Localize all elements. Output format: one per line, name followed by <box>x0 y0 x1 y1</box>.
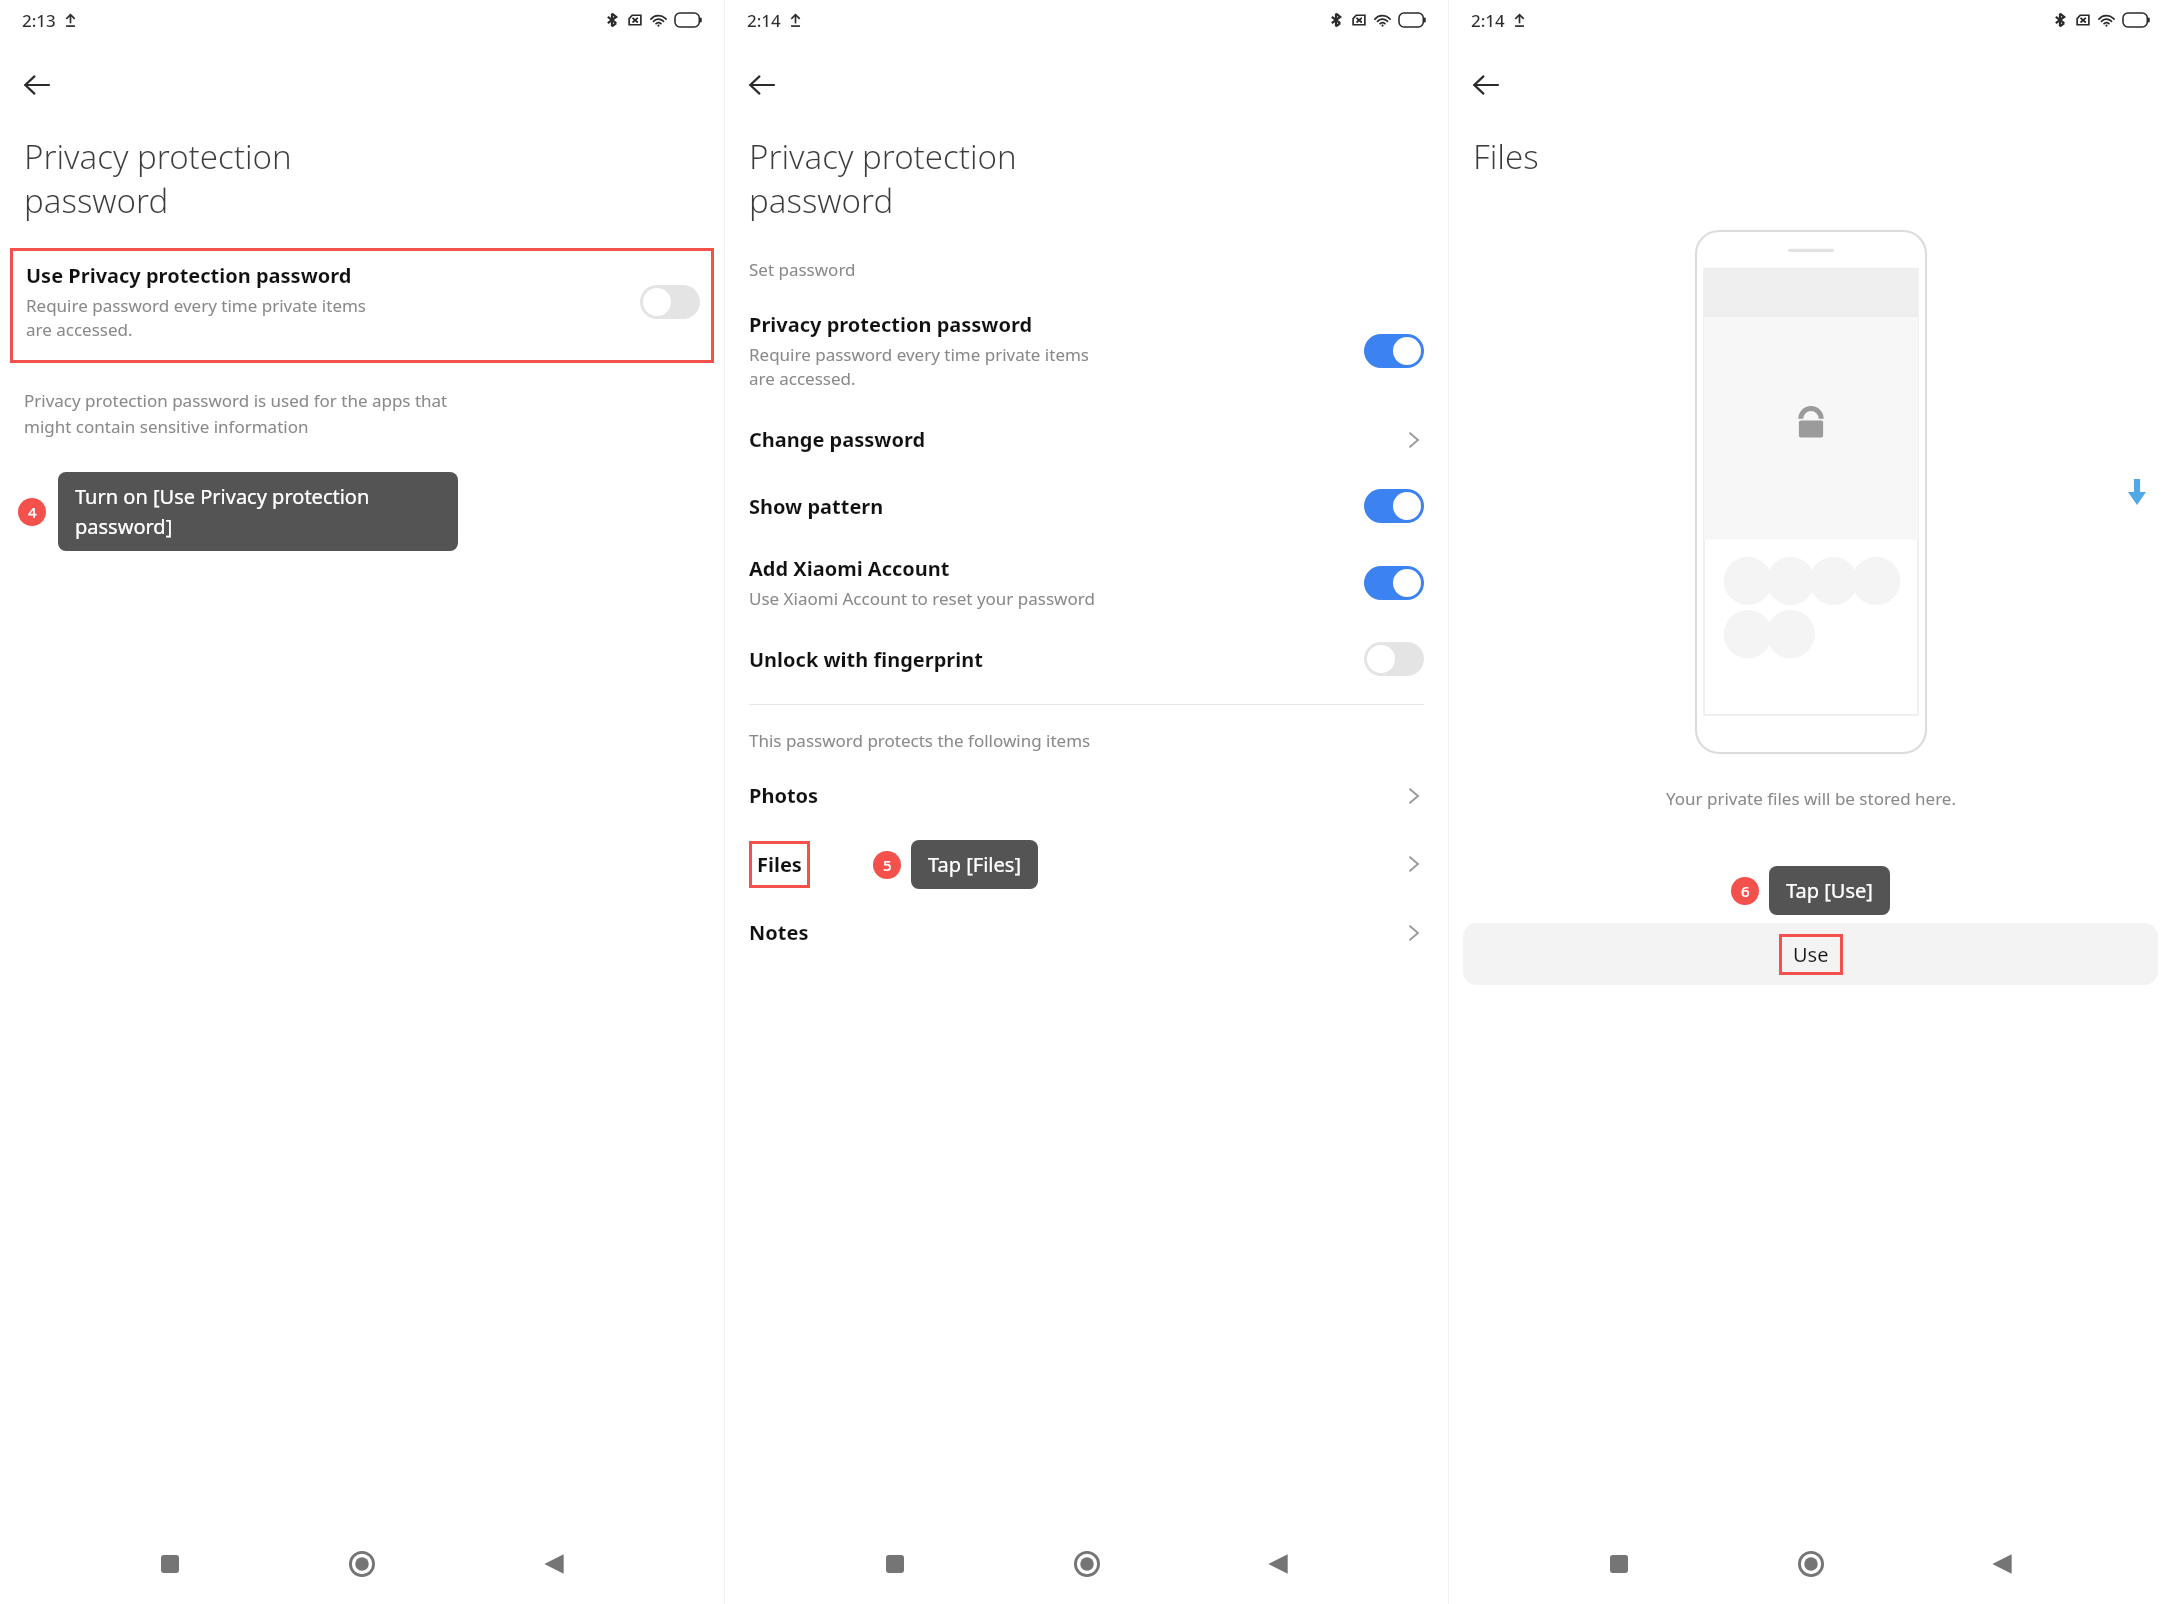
button[interactable]: Home <box>1065 1542 1109 1586</box>
staticText: Set password <box>749 258 856 281</box>
staticText: Privacy protection password <box>24 134 292 222</box>
button[interactable]: Toggle <box>640 285 700 319</box>
staticText: Use Xiaomi Account to reset your passwor… <box>749 587 1095 610</box>
button[interactable]: Recents <box>148 1542 192 1586</box>
staticText: Notes <box>749 919 1404 946</box>
button[interactable]: Add Xiaomi Account <box>725 551 1448 614</box>
staticText: Your private files will be stored here. <box>1666 787 1956 810</box>
staticText: Photos <box>749 782 1404 809</box>
staticText: 4 <box>28 502 37 522</box>
staticText: Privacy protection password <box>749 134 1017 222</box>
staticText: 2:14 <box>1471 9 1505 32</box>
button[interactable]: Recents <box>1597 1542 1641 1586</box>
staticText: Show pattern <box>749 493 1364 520</box>
button[interactable]: Back <box>1459 58 1513 112</box>
staticText: 6 <box>1741 881 1750 901</box>
button[interactable]: Recents <box>873 1542 917 1586</box>
staticText: Require password every time private item… <box>749 343 1090 390</box>
button[interactable]: Toggle <box>1364 334 1424 368</box>
staticText: Files <box>1473 134 1539 179</box>
staticText: 5 <box>883 855 892 875</box>
button[interactable]: Home <box>1789 1542 1833 1586</box>
button[interactable]: Change password <box>725 422 1448 457</box>
staticText: This password protects the following ite… <box>749 729 1091 752</box>
staticText: Files <box>757 851 802 878</box>
button[interactable]: Photos <box>725 778 1448 813</box>
button[interactable]: Home <box>340 1542 384 1586</box>
staticText: Privacy protection password <box>749 311 1033 338</box>
button[interactable]: Back <box>1256 1542 1300 1586</box>
button[interactable]: Toggle <box>1364 642 1424 676</box>
staticText: Use <box>1793 941 1829 968</box>
staticText: Change password <box>749 426 1404 453</box>
button[interactable]: Use <box>1463 923 2158 985</box>
staticText: Unlock with fingerprint <box>749 646 1364 673</box>
button[interactable]: Use Privacy protection password <box>10 248 714 363</box>
button[interactable]: Privacy protection password <box>725 307 1448 394</box>
staticText: 2:14 <box>747 9 781 32</box>
button[interactable]: Notes <box>725 915 1448 950</box>
button[interactable]: Back <box>735 58 789 112</box>
staticText: Add Xiaomi Account <box>749 555 950 582</box>
button[interactable]: Back <box>10 58 64 112</box>
staticText: Require password every time private item… <box>26 294 367 341</box>
button[interactable]: Show pattern <box>725 485 1448 527</box>
button[interactable]: Unlock with fingerprint <box>725 638 1448 680</box>
staticText: Tap [Use] <box>1786 877 1873 904</box>
staticText: Tap [Files] <box>928 851 1021 878</box>
staticText: Privacy protection password is used for … <box>24 389 448 438</box>
button[interactable]: Back <box>532 1542 576 1586</box>
button[interactable]: Back <box>1980 1542 2024 1586</box>
staticText: 2:13 <box>22 9 56 32</box>
button[interactable]: Files <box>725 835 1448 893</box>
staticText: Turn on [Use Privacy protection password… <box>75 483 370 540</box>
button[interactable]: Toggle <box>1364 489 1424 523</box>
button[interactable]: Toggle <box>1364 566 1424 600</box>
staticText: Use Privacy protection password <box>26 262 352 289</box>
